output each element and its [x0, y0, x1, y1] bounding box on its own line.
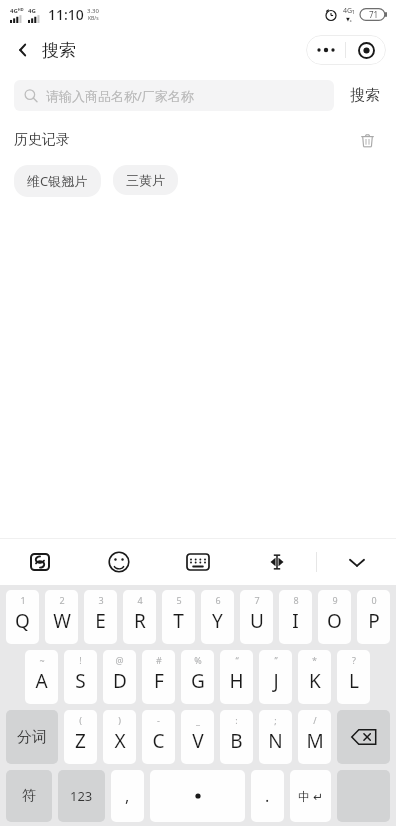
staticText: 6 [215, 594, 221, 606]
staticText: D [113, 668, 127, 694]
staticText: 123 [70, 787, 93, 805]
button[interactable]: 搜索 [348, 80, 382, 111]
staticText: Q [15, 608, 30, 634]
staticText: 0 [371, 594, 377, 606]
button[interactable]: 7 [240, 590, 273, 644]
button[interactable]: 维C银翘片 [14, 165, 101, 197]
button[interactable]: Back [0, 33, 84, 67]
staticText: 搜索 [42, 40, 76, 61]
button[interactable]: # [142, 650, 175, 704]
button[interactable]: ! [64, 650, 97, 704]
button[interactable]: Close mini program [346, 35, 386, 65]
button[interactable]: ~ [25, 650, 58, 704]
staticText: 11:10 [48, 5, 84, 24]
staticText: # [156, 654, 162, 666]
staticText: ( [79, 714, 82, 726]
staticText: 4G [28, 7, 36, 15]
staticText: Y [212, 608, 223, 634]
staticText: ▼₄ [346, 16, 352, 23]
button[interactable]: ( [64, 710, 97, 764]
staticText: 3 [98, 594, 104, 606]
staticText: 9 [332, 594, 338, 606]
staticText: S [75, 668, 86, 694]
button[interactable]: ; [259, 710, 292, 764]
button[interactable]: 2 [45, 590, 78, 644]
staticText: 三黄片 [126, 172, 165, 188]
staticText: A [35, 668, 48, 694]
button[interactable]: Hide keyboard [317, 539, 396, 585]
button[interactable]: ) [103, 710, 136, 764]
button[interactable]: 123 [58, 770, 105, 822]
button[interactable]: . [251, 770, 284, 822]
button[interactable]: Keyboard layout [158, 539, 237, 585]
button[interactable]: : [220, 710, 253, 764]
button[interactable]: Emoji [79, 539, 158, 585]
staticText: ) [118, 714, 121, 726]
staticText: . [265, 785, 270, 807]
button[interactable]: 分词 [6, 710, 58, 764]
button[interactable]: ? [337, 650, 370, 704]
button[interactable] [150, 770, 245, 822]
button[interactable]: Move cursor [237, 539, 316, 585]
button[interactable]: 8 [279, 590, 312, 644]
button[interactable]: @ [103, 650, 136, 704]
button[interactable]: 3 [84, 590, 117, 644]
staticText: ” [274, 654, 278, 666]
staticText: 71 [369, 9, 379, 20]
staticText: 符 [22, 787, 36, 805]
staticText: C [152, 728, 165, 754]
button[interactable]: % [181, 650, 214, 704]
staticText: 3.30 [87, 7, 99, 15]
staticText: 4G₁ [343, 6, 355, 16]
button[interactable]: Backspace [337, 710, 390, 764]
staticText: L [349, 668, 359, 694]
button[interactable]: 5 [162, 590, 195, 644]
button[interactable]: 中 ↵ [290, 770, 331, 822]
staticText: 8 [293, 594, 299, 606]
staticText: G [191, 668, 205, 694]
staticText: 4Gᴴᴰ [10, 7, 24, 15]
staticText: ! [79, 654, 82, 666]
staticText: F [154, 668, 164, 694]
staticText: B [230, 728, 243, 754]
button[interactable]: Clear history [352, 125, 382, 155]
staticText: M [306, 728, 324, 754]
staticText: 搜索 [350, 86, 380, 105]
staticText: , [125, 785, 130, 807]
button[interactable]: _ [181, 710, 214, 764]
button[interactable]: “ [220, 650, 253, 704]
staticText: 7 [254, 594, 260, 606]
button[interactable]: More [306, 35, 345, 65]
button[interactable]: * [298, 650, 331, 704]
staticText: U [250, 608, 264, 634]
other: Back [12, 39, 34, 61]
button[interactable]: 三黄片 [113, 165, 178, 195]
button[interactable]: 6 [201, 590, 234, 644]
staticText: 中 ↵ [298, 788, 324, 804]
staticText: X [114, 728, 126, 754]
button[interactable]: Sogou input [0, 539, 79, 585]
button[interactable]: / [298, 710, 331, 764]
button[interactable]: 符 [6, 770, 52, 822]
button[interactable]: , [111, 770, 144, 822]
staticText: E [95, 608, 106, 634]
staticText: ? [352, 654, 356, 666]
staticText: * [312, 654, 317, 666]
staticText: 分词 [17, 728, 47, 747]
staticText: 历史记录 [14, 131, 70, 149]
staticText: “ [235, 654, 239, 666]
button[interactable]: - [142, 710, 175, 764]
staticText: 4 [137, 594, 143, 606]
button[interactable]: 4 [123, 590, 156, 644]
staticText: 5 [176, 594, 182, 606]
button[interactable]: ” [259, 650, 292, 704]
staticText: V [192, 728, 204, 754]
button[interactable]: 请输入商品名称/厂家名称 [14, 80, 334, 111]
staticText: H [229, 668, 244, 694]
button[interactable]: 0 [357, 590, 390, 644]
staticText: / [313, 714, 317, 726]
button[interactable]: 1 [6, 590, 39, 644]
button[interactable]: 9 [318, 590, 351, 644]
staticText: P [368, 608, 380, 634]
